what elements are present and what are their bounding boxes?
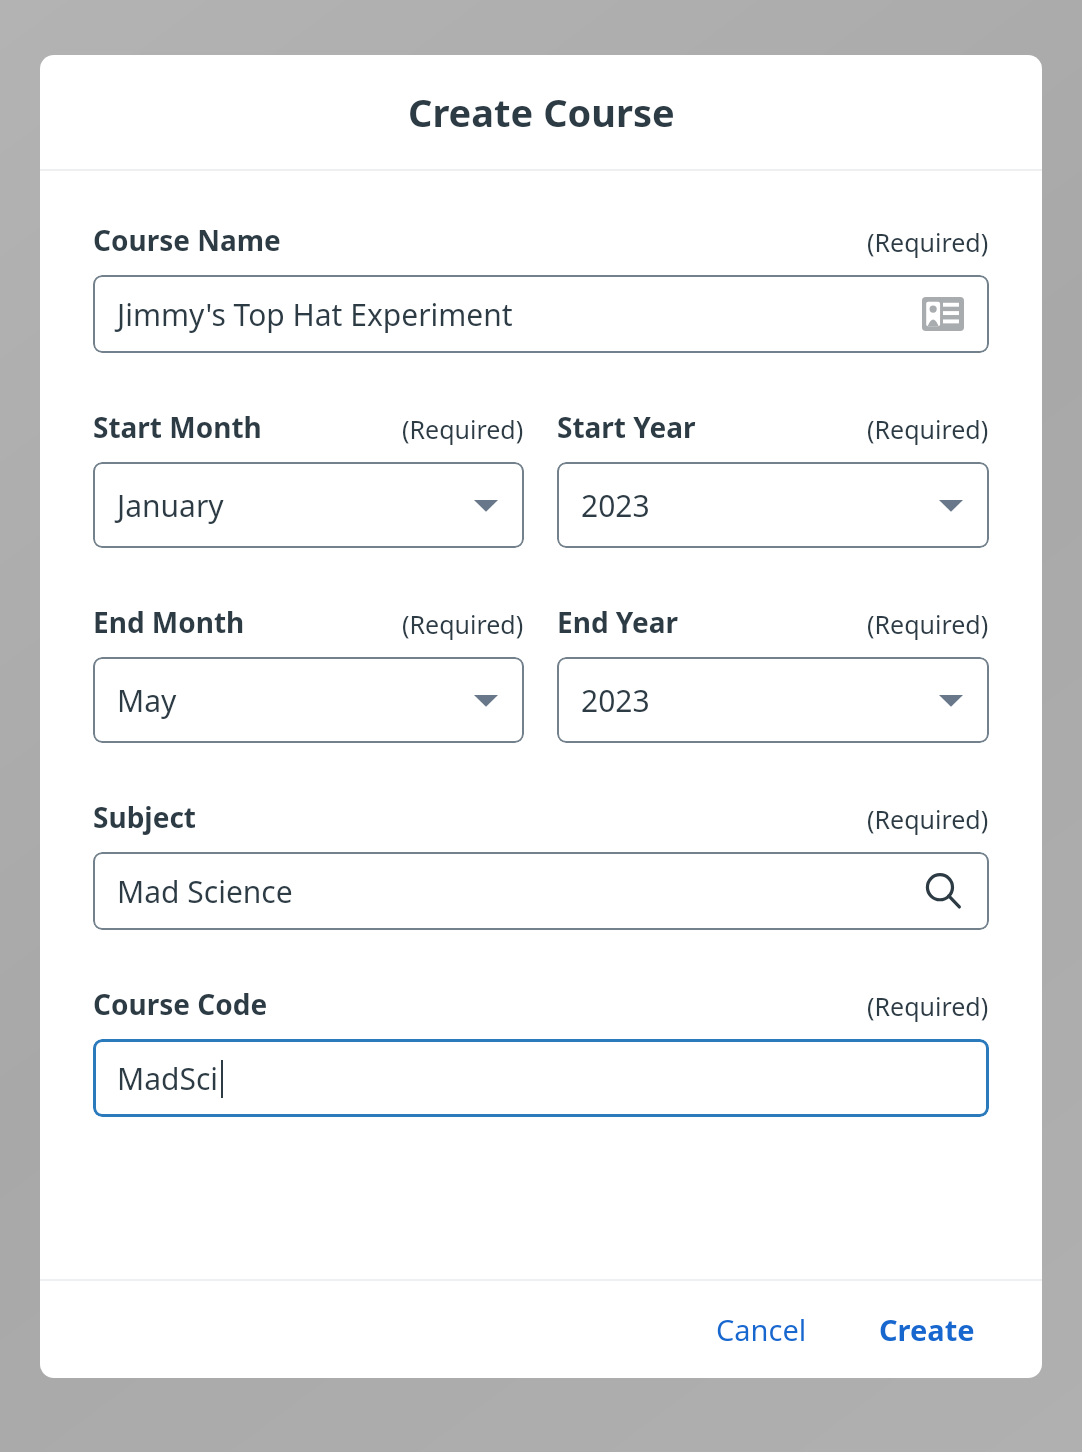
button[interactable]: Create: [865, 1300, 989, 1359]
button[interactable]: Search subjects: [919, 867, 967, 915]
staticText: Start Month: [93, 408, 262, 446]
button[interactable]: Cancel: [702, 1300, 821, 1359]
staticText: Course Code: [93, 985, 268, 1023]
staticText: (Required): [867, 802, 989, 836]
staticText: Cancel: [716, 1310, 807, 1349]
button[interactable]: 2023: [557, 462, 989, 548]
staticText: May: [117, 680, 177, 721]
button[interactable]: Mad Science: [93, 852, 989, 930]
staticText: Mad Science: [117, 871, 293, 912]
button[interactable]: MadSci: [93, 1039, 989, 1117]
staticText: End Year: [557, 603, 678, 641]
staticText: (Required): [867, 989, 989, 1023]
staticText: End Month: [93, 603, 245, 641]
staticText: Subject: [93, 798, 196, 836]
staticText: (Required): [402, 412, 524, 446]
staticText: Start Year: [557, 408, 696, 446]
staticText: 2023: [581, 680, 650, 721]
staticText: MadSci: [117, 1058, 219, 1099]
staticText: (Required): [867, 607, 989, 641]
button[interactable]: 2023: [557, 657, 989, 743]
staticText: (Required): [402, 607, 524, 641]
staticText: Jimmy's Top Hat Experiment: [117, 294, 513, 335]
staticText: (Required): [867, 412, 989, 446]
staticText: Course Name: [93, 221, 281, 259]
button[interactable]: January: [93, 462, 524, 548]
staticText: January: [117, 485, 224, 526]
button[interactable]: May: [93, 657, 524, 743]
staticText: (Required): [867, 225, 989, 259]
button[interactable]: Choose from contacts: [919, 290, 967, 338]
staticText: 2023: [581, 485, 650, 526]
staticText: Create: [879, 1310, 975, 1349]
staticText: Create Course: [408, 86, 675, 138]
button[interactable]: Jimmy's Top Hat Experiment: [93, 275, 989, 353]
